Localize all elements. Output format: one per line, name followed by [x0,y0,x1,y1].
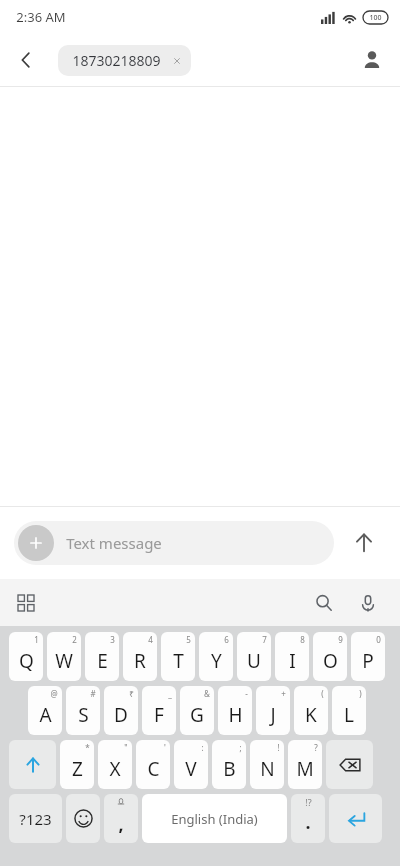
staticText: ) [359,688,362,699]
button[interactable]: 18730218809 [58,45,191,76]
staticText: ? [314,742,318,753]
staticText: * [85,742,90,753]
staticText: 1 [34,634,39,645]
staticText: P [362,648,374,674]
staticText: . [305,810,311,835]
button[interactable]: # [66,686,100,735]
button[interactable]: Add attachment [14,521,334,565]
button[interactable]: 6 [199,632,233,681]
staticText: C [147,756,160,782]
button[interactable]: 0 [351,632,385,681]
staticText: ' [164,742,166,753]
button[interactable]: 4 [123,632,157,681]
staticText: 4 [148,634,153,645]
button[interactable]: Enter [329,794,382,843]
staticText: ! [277,742,280,753]
button[interactable]: @ [28,686,62,735]
button[interactable]: Send [342,521,386,565]
button[interactable]: ? [288,740,322,789]
button[interactable]: ₹ [104,686,138,735]
button[interactable]: Shift [9,740,56,789]
button[interactable]: ( [294,686,328,735]
button[interactable]: ) [332,686,366,735]
staticText: J [270,702,276,728]
staticText: W [55,648,73,674]
button[interactable]: Emoji [66,794,100,843]
staticText: 2:36 AM [16,8,66,26]
staticText: K [305,702,317,728]
staticText: !? [305,796,312,808]
staticText: R [134,648,146,674]
button[interactable]: Backspace [326,740,373,789]
button[interactable]: Keyboard options [8,585,44,621]
staticText: O [323,648,338,674]
button[interactable]: " [98,740,132,789]
button[interactable]: _ [142,686,176,735]
button[interactable]: & [180,686,214,735]
staticText: A [39,702,52,728]
button[interactable]: ; [212,740,246,789]
button[interactable]: , [104,794,138,843]
staticText: " [124,742,128,753]
button[interactable]: 5 [161,632,195,681]
button[interactable]: 1 [9,632,43,681]
button[interactable]: Back [6,40,46,80]
staticText: & [204,688,210,699]
button[interactable]: ?123 [9,794,62,843]
staticText: H [228,702,243,728]
staticText: M [296,756,314,782]
staticText: _ [168,688,172,699]
staticText: Text message [66,533,162,553]
staticText: U [247,648,261,674]
staticText: 2 [72,634,77,645]
button[interactable]: !? [291,794,325,843]
staticText: 0 [376,634,381,645]
staticText: 9 [338,634,343,645]
staticText: Y [211,648,222,674]
button[interactable]: ! [250,740,284,789]
staticText: # [90,688,96,699]
staticText: X [109,756,121,782]
button[interactable]: + [256,686,290,735]
staticText: English (India) [171,810,258,828]
button[interactable]: * [60,740,94,789]
staticText: D [114,702,128,728]
staticText: 18730218809 [72,51,161,70]
staticText: , [118,812,124,837]
staticText: @ [50,688,58,699]
staticText: L [344,702,354,728]
button[interactable]: 9 [313,632,347,681]
button[interactable]: - [218,686,252,735]
staticText: E [97,648,108,674]
button[interactable]: 3 [85,632,119,681]
button[interactable]: Voice input [350,585,386,621]
button[interactable]: Add attachment [18,525,54,561]
staticText: : [201,742,204,753]
button[interactable]: ' [136,740,170,789]
button[interactable]: English (India) [142,794,287,843]
staticText: I [289,648,296,674]
staticText: B [223,756,236,782]
staticText: + [281,688,286,699]
staticText: F [154,702,164,728]
staticText: N [260,756,275,782]
staticText: 100 [369,13,382,23]
staticText: T [173,648,184,674]
staticText: 5 [186,634,191,645]
button[interactable]: : [174,740,208,789]
staticText: Q [19,648,34,674]
button[interactable]: 7 [237,632,271,681]
staticText: ; [239,742,242,753]
staticText: S [78,702,89,728]
staticText: ₹ [129,688,134,699]
button[interactable]: 8 [275,632,309,681]
staticText: - [245,688,248,699]
staticText: G [190,702,204,728]
staticText: 7 [262,634,267,645]
button[interactable]: 2 [47,632,81,681]
button[interactable]: Contact [352,40,392,80]
button[interactable]: Search [306,585,342,621]
staticText: 3 [110,634,115,645]
staticText: Z [72,756,83,782]
staticText: ?123 [19,809,52,829]
